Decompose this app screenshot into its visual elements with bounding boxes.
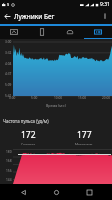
staticText: 5:00 xyxy=(31,96,38,100)
staticText: 144 xyxy=(6,178,12,182)
staticText: Максимум xyxy=(75,142,93,145)
staticText: Частота пульса (уд/м) xyxy=(3,118,49,124)
staticText: 15:00 xyxy=(78,96,87,100)
staticText: S xyxy=(7,2,10,7)
staticText: 10:00 xyxy=(54,96,63,100)
button[interactable]: More options xyxy=(98,9,112,23)
button[interactable]: Map xyxy=(0,26,28,38)
staticText: 177 xyxy=(77,129,92,141)
staticText: 9:31 xyxy=(100,1,110,8)
button[interactable]: Home xyxy=(46,184,66,200)
staticText: 4:04 xyxy=(5,62,12,66)
button[interactable]: Charts xyxy=(84,26,112,38)
staticText: Лужники Бег xyxy=(14,12,55,21)
staticText: 180 xyxy=(6,150,12,154)
staticText: 4:37 xyxy=(5,72,12,76)
staticText: Средняя xyxy=(21,142,36,145)
button[interactable]: Recent apps xyxy=(79,184,99,200)
staticText: 5:09 xyxy=(5,83,12,87)
button[interactable]: Laps xyxy=(56,26,84,38)
staticText: 3:00 xyxy=(5,40,12,44)
staticText: Время (м:с) xyxy=(46,103,66,108)
staticText: 20:00 xyxy=(102,96,111,100)
staticText: 5:41 xyxy=(5,94,12,98)
staticText: 0:00 xyxy=(9,96,16,100)
button[interactable]: 172 xyxy=(0,129,56,145)
staticText: 172 xyxy=(21,129,36,141)
button[interactable]: Back xyxy=(13,184,33,200)
button[interactable]: Back xyxy=(0,9,14,23)
button[interactable]: Splits xyxy=(28,26,56,38)
button[interactable]: 177 xyxy=(56,129,112,145)
staticText: 3:32 xyxy=(5,51,12,55)
staticText: 156 xyxy=(6,169,12,173)
staticText: 168 xyxy=(6,159,12,163)
